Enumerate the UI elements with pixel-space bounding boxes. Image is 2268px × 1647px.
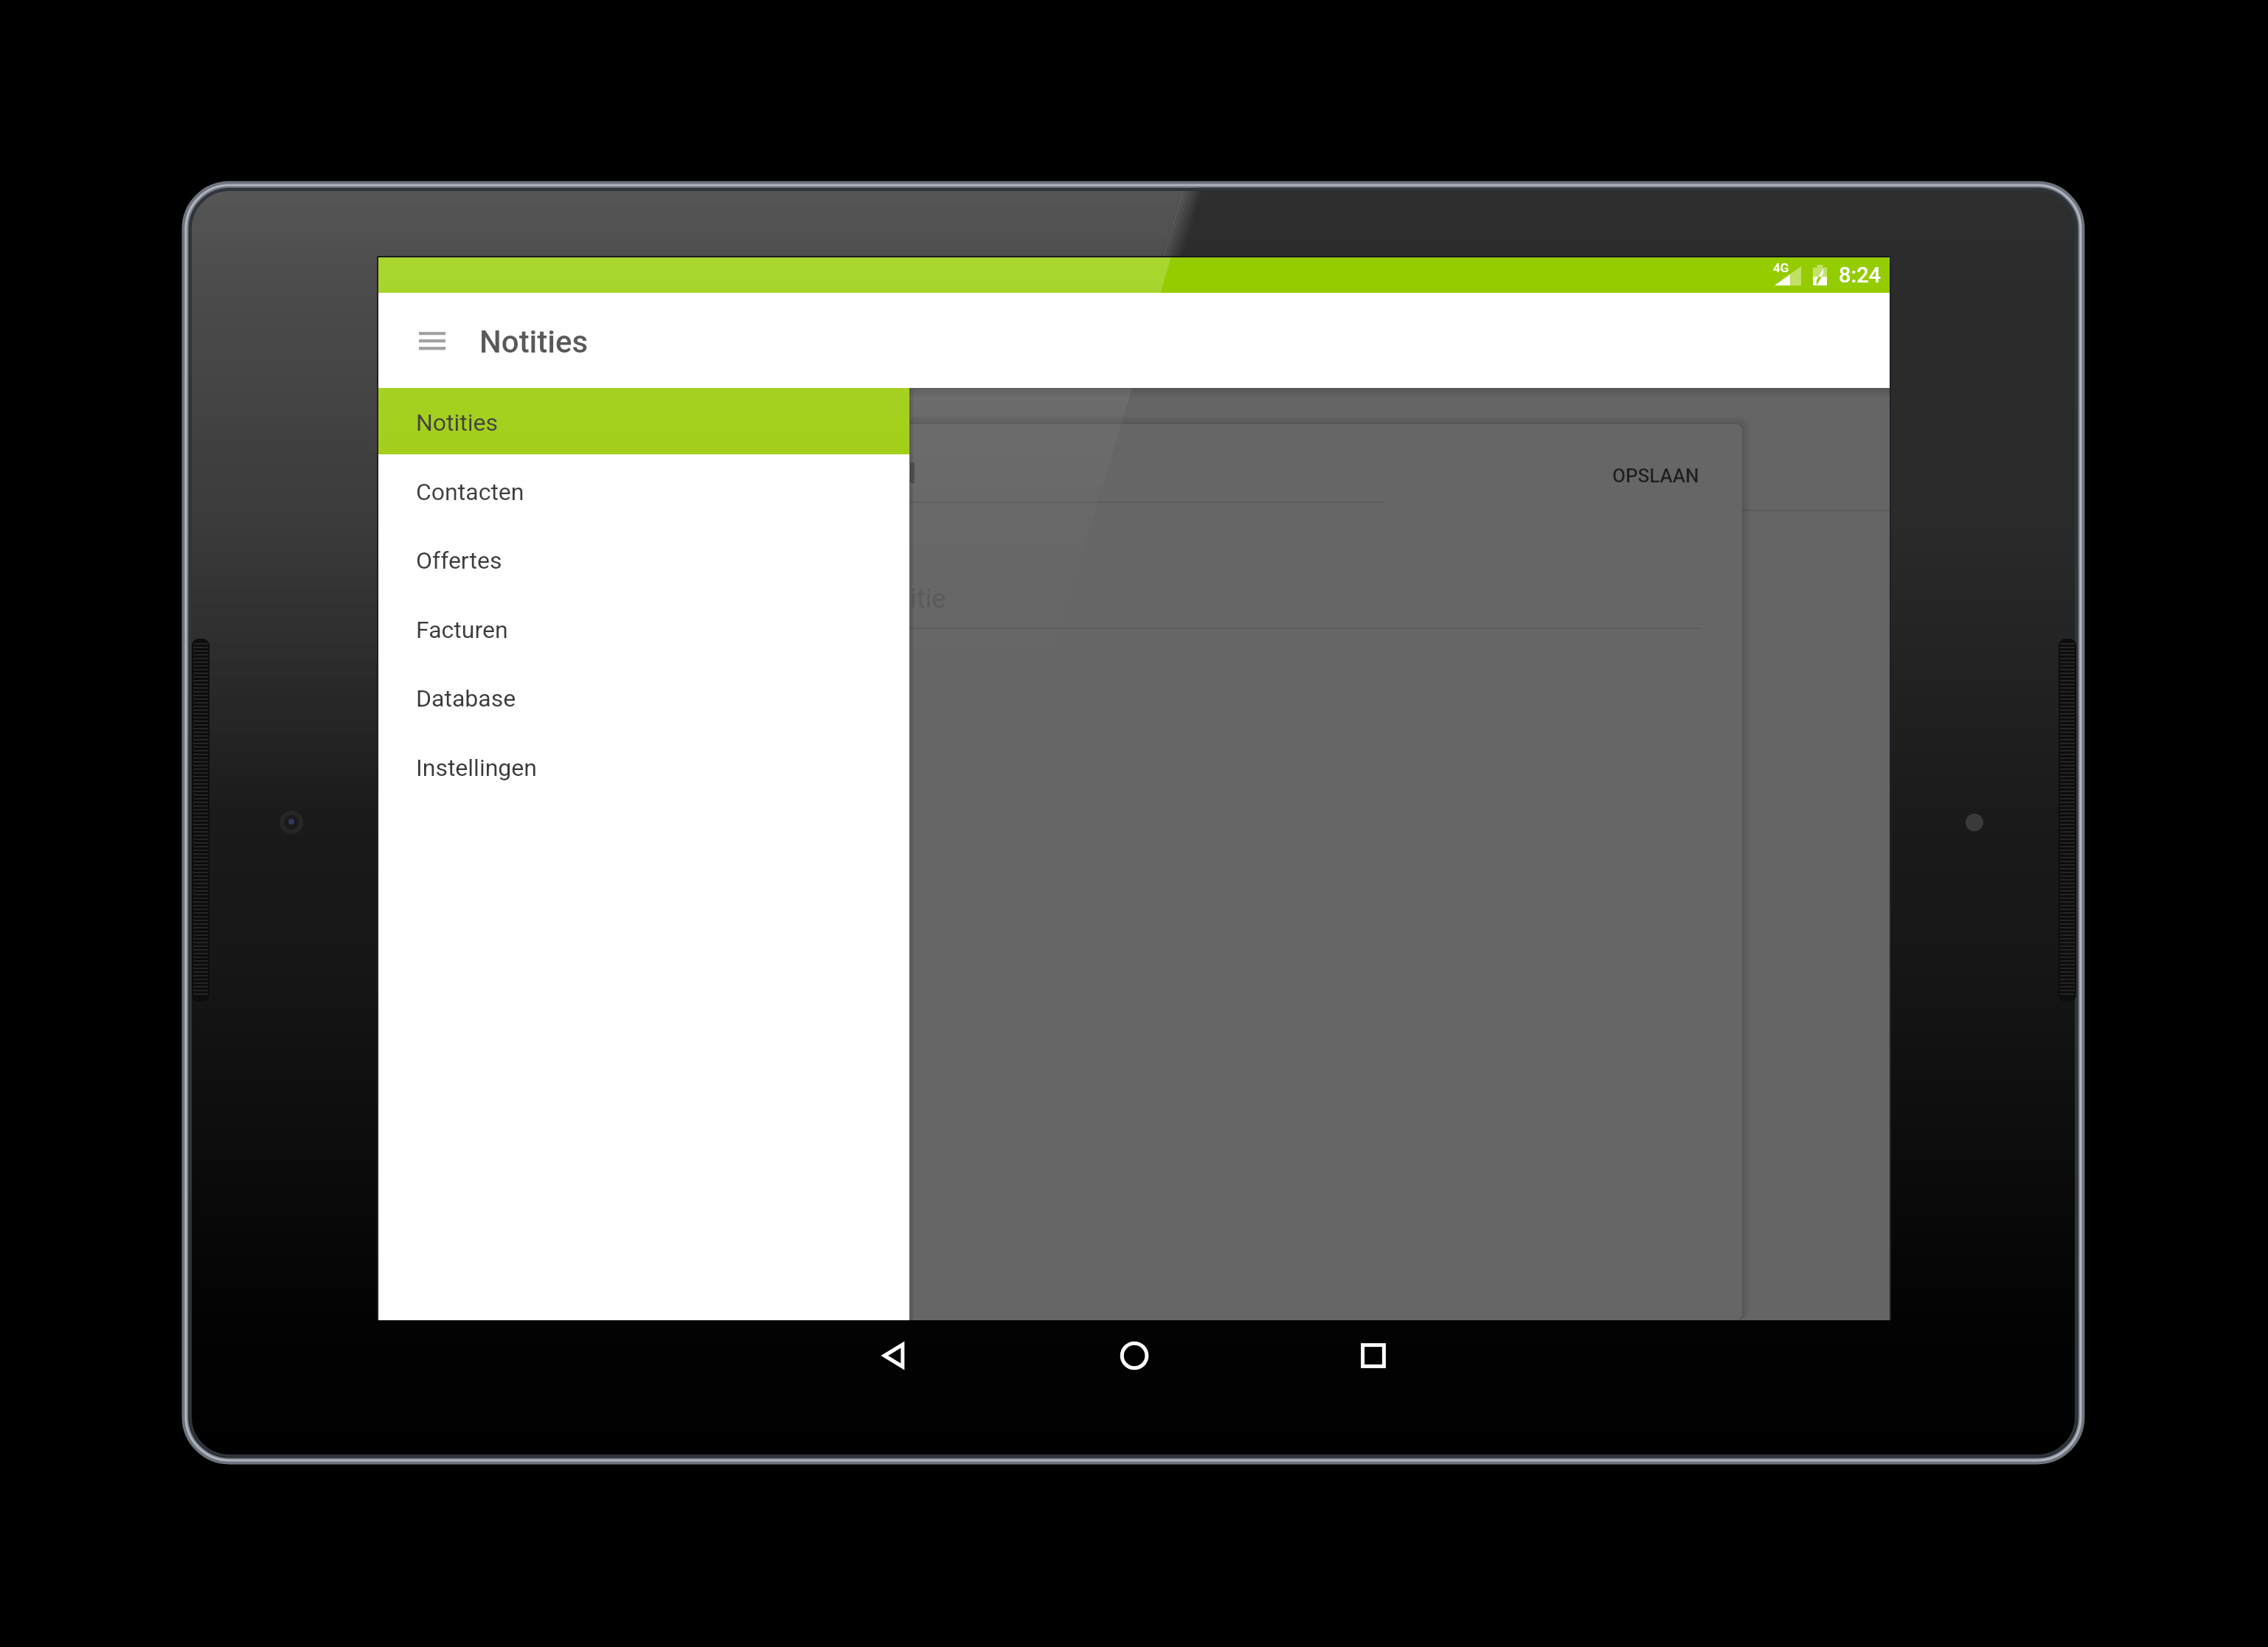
staticText: Notities bbox=[416, 409, 499, 437]
button[interactable]: Recent apps bbox=[1351, 1334, 1395, 1378]
button[interactable]: Home bbox=[1112, 1334, 1156, 1378]
button[interactable]: Open navigation drawer bbox=[406, 309, 459, 372]
staticText: OPSLAAN bbox=[1612, 465, 1699, 487]
staticText: Database bbox=[416, 684, 516, 712]
button[interactable]: Back bbox=[873, 1334, 917, 1378]
button[interactable]: OPSLAAN bbox=[1595, 454, 1716, 496]
button[interactable]: Notities bbox=[378, 388, 909, 457]
staticText: Offertes bbox=[416, 547, 502, 575]
staticText: 4G bbox=[1773, 260, 1789, 275]
button[interactable]: Facturen bbox=[378, 595, 909, 665]
button[interactable]: Contacten bbox=[378, 457, 909, 527]
button[interactable]: Instellingen bbox=[378, 733, 909, 802]
button[interactable]: Database bbox=[378, 664, 909, 733]
button[interactable]: Offertes bbox=[378, 526, 909, 595]
staticText: Facturen bbox=[416, 616, 508, 644]
staticText: 8:24 bbox=[1839, 263, 1882, 288]
staticText: Instellingen bbox=[416, 754, 537, 782]
staticText: Notities bbox=[479, 324, 589, 360]
staticText: Contacten bbox=[416, 478, 524, 506]
staticText: Notitie bbox=[867, 583, 946, 614]
